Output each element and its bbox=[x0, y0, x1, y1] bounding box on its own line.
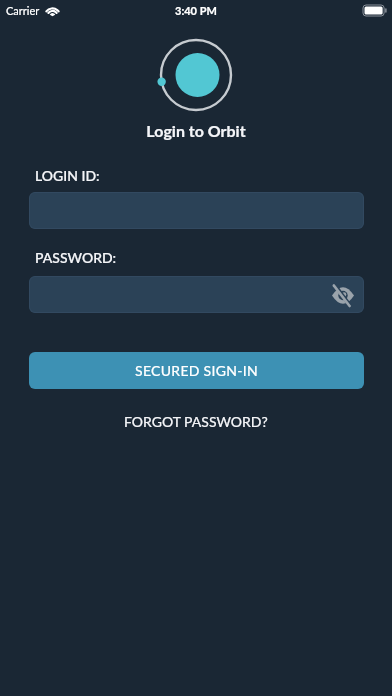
staticText: LOGIN ID: bbox=[35, 167, 100, 184]
staticText: SECURED SIGN-IN bbox=[135, 362, 258, 379]
staticText: PASSWORD: bbox=[35, 249, 117, 266]
staticText: Login to Orbit bbox=[0, 121, 392, 140]
staticText: Carrier bbox=[6, 4, 40, 17]
staticText: FORGOT PASSWORD? bbox=[124, 413, 268, 430]
button[interactable]: SECURED SIGN-IN bbox=[29, 352, 364, 389]
staticText: 3:40 PM bbox=[175, 4, 217, 17]
button[interactable] bbox=[29, 276, 364, 313]
button[interactable]: FORGOT PASSWORD? bbox=[124, 413, 268, 430]
